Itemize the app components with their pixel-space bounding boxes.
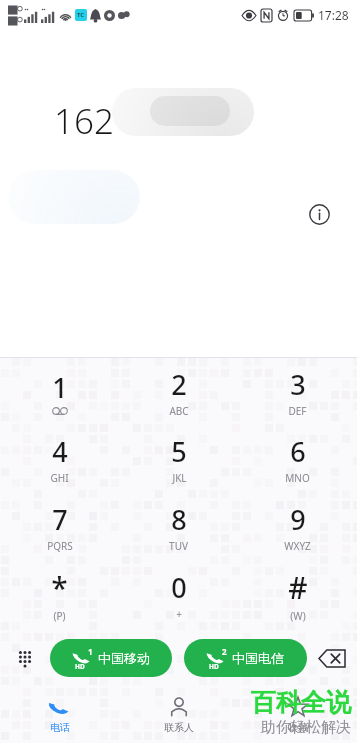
staticText: WXYZ xyxy=(284,539,311,553)
button[interactable]: 1 xyxy=(50,639,172,677)
button[interactable]: 联系人 xyxy=(119,687,238,743)
button[interactable]: 8 xyxy=(119,493,238,561)
staticText: 2 xyxy=(171,366,187,403)
button[interactable]: 7 xyxy=(0,493,119,561)
button[interactable]: 1 xyxy=(0,358,119,425)
staticText: 162 xyxy=(54,97,114,145)
staticText: TUV xyxy=(169,539,188,553)
staticText: 中国电信 xyxy=(232,650,284,666)
button[interactable]: 3 xyxy=(238,358,357,425)
button[interactable]: 6 xyxy=(238,425,357,493)
staticText: (P) xyxy=(53,609,66,623)
button[interactable]: Hide dialpad xyxy=(0,629,50,687)
staticText: 收藏 xyxy=(288,721,308,734)
staticText: 5 xyxy=(171,433,187,470)
button[interactable]: 4 xyxy=(0,425,119,493)
staticText: 电话 xyxy=(50,721,70,734)
staticText: HD xyxy=(209,662,219,671)
staticText: 6 xyxy=(290,433,306,470)
button[interactable]: Info xyxy=(300,195,338,233)
button[interactable]: Backspace xyxy=(307,629,357,687)
staticText: * xyxy=(51,567,68,608)
staticText: 1 xyxy=(52,369,68,406)
button[interactable]: 9 xyxy=(238,493,357,561)
staticText: 联系人 xyxy=(164,721,194,734)
button[interactable]: 5 xyxy=(119,425,238,493)
staticText: 中国移动 xyxy=(98,650,150,666)
staticText: + xyxy=(176,607,182,621)
button[interactable]: * xyxy=(0,561,119,629)
button[interactable]: 收藏 xyxy=(238,687,357,743)
staticText: ABC xyxy=(169,404,189,418)
staticText: 17:28 xyxy=(318,7,349,23)
staticText: 百科全说 xyxy=(251,687,351,718)
staticText: 9 xyxy=(290,501,306,538)
staticText: MNO xyxy=(285,471,310,485)
staticText: HD xyxy=(75,662,85,671)
staticText: DEF xyxy=(288,404,307,418)
button[interactable]: 电话 xyxy=(0,687,119,743)
staticText: GHI xyxy=(50,471,69,485)
staticText: 1 xyxy=(88,646,93,657)
staticText: # xyxy=(288,567,308,608)
button[interactable]: 2 xyxy=(119,358,238,425)
button[interactable]: 2 xyxy=(184,639,307,677)
staticText: JKL xyxy=(172,471,187,485)
staticText: TC xyxy=(77,11,85,19)
staticText: 8 xyxy=(171,501,187,538)
button[interactable]: 0 xyxy=(119,561,238,629)
staticText: 4 xyxy=(52,433,68,470)
staticText: 助你轻松解决 xyxy=(261,718,351,737)
button[interactable]: # xyxy=(238,561,357,629)
staticText: 3 xyxy=(290,366,306,403)
staticText: 7 xyxy=(52,501,68,538)
staticText: 2 xyxy=(222,646,227,657)
staticText: PQRS xyxy=(47,539,73,553)
staticText: (W) xyxy=(290,609,306,623)
staticText: 0 xyxy=(171,569,187,606)
